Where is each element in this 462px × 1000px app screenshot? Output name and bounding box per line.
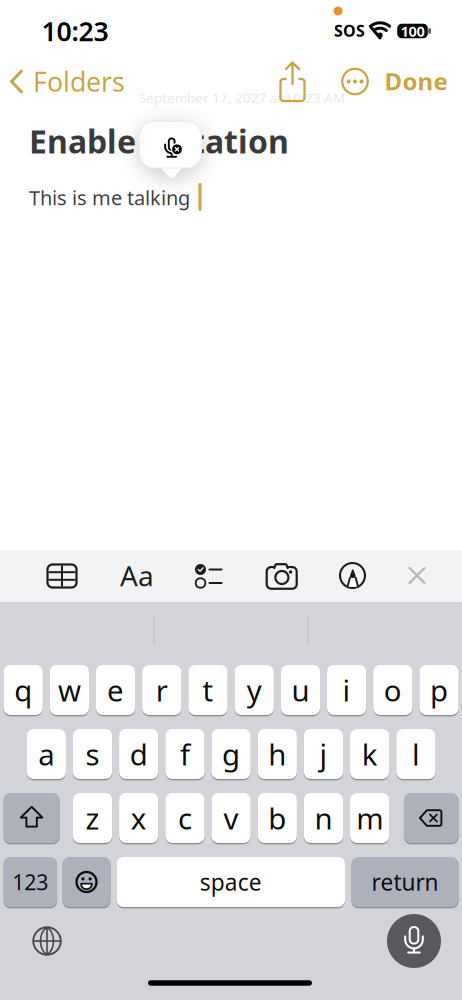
button[interactable]: p: [419, 665, 459, 715]
button[interactable]: e: [96, 665, 135, 715]
button[interactable]: Text format: [120, 557, 154, 594]
button[interactable]: b: [258, 793, 297, 843]
button[interactable]: o: [373, 665, 412, 715]
button[interactable]: z: [73, 793, 112, 843]
button[interactable]: More: [340, 66, 370, 96]
button[interactable]: space: [116, 857, 345, 907]
button[interactable]: 123: [4, 857, 57, 907]
staticText: p: [430, 670, 448, 709]
staticText: Done: [384, 65, 447, 97]
button[interactable]: Dismiss toolbar: [402, 560, 432, 590]
button[interactable]: Emoji: [62, 857, 110, 907]
button[interactable]: l: [396, 729, 435, 779]
staticText: September 17, 2027 at 10:23 AM: [139, 89, 345, 106]
button[interactable]: r: [142, 665, 181, 715]
staticText: h: [268, 734, 286, 773]
button[interactable]: Shift: [4, 793, 60, 843]
button[interactable]: Next keyboard: [31, 925, 63, 957]
button[interactable]: n: [304, 793, 343, 843]
staticText: t: [202, 670, 213, 709]
staticText: v: [224, 798, 239, 837]
staticText: return: [371, 867, 438, 897]
button[interactable]: Done: [384, 65, 447, 97]
button[interactable]: Back to Folders: [6, 64, 126, 99]
staticText: x: [131, 798, 147, 837]
staticText: g: [222, 734, 240, 773]
button[interactable]: return: [351, 857, 458, 907]
staticText: r: [156, 670, 168, 709]
button[interactable]: g: [211, 729, 251, 779]
button[interactable]: Stop dictation: [139, 121, 201, 179]
staticText: 123: [12, 868, 48, 896]
button[interactable]: s: [73, 729, 112, 779]
staticText: j: [319, 734, 327, 773]
staticText: This is me talking: [29, 184, 190, 211]
staticText: 10:23: [41, 13, 108, 49]
staticText: b: [268, 798, 286, 837]
staticText: n: [314, 798, 332, 837]
button[interactable]: Markup: [337, 560, 367, 590]
staticText: c: [178, 798, 192, 837]
button[interactable]: Checklist: [193, 561, 223, 591]
button[interactable]: t: [188, 665, 228, 715]
button[interactable]: f: [165, 729, 204, 779]
button[interactable]: Insert table: [45, 562, 79, 590]
staticText: l: [412, 734, 420, 773]
button[interactable]: w: [50, 665, 89, 715]
button[interactable]: h: [258, 729, 297, 779]
staticText: u: [291, 670, 309, 709]
staticText: space: [200, 867, 262, 897]
staticText: SOS: [334, 20, 365, 41]
button[interactable]: Share: [270, 59, 314, 103]
staticText: 100: [400, 21, 424, 41]
staticText: e: [107, 670, 124, 709]
button[interactable]: Delete: [404, 793, 458, 843]
staticText: k: [362, 734, 378, 773]
staticText: a: [38, 734, 54, 773]
button[interactable]: c: [165, 793, 204, 843]
button[interactable]: j: [304, 729, 343, 779]
button[interactable]: v: [211, 793, 251, 843]
button[interactable]: k: [350, 729, 389, 779]
staticText: Folders: [33, 64, 125, 99]
staticText: o: [384, 670, 402, 709]
button[interactable]: x: [119, 793, 158, 843]
staticText: m: [356, 798, 383, 837]
staticText: s: [85, 734, 99, 773]
staticText: Enable dictation: [29, 120, 289, 162]
staticText: Aa: [120, 557, 154, 594]
button[interactable]: Attach photo: [264, 561, 300, 591]
staticText: y: [247, 670, 262, 709]
staticText: d: [130, 734, 148, 773]
button[interactable]: y: [235, 665, 274, 715]
button[interactable]: a: [27, 729, 66, 779]
staticText: f: [180, 734, 190, 773]
button[interactable]: d: [119, 729, 158, 779]
button[interactable]: u: [281, 665, 320, 715]
staticText: q: [14, 670, 32, 709]
staticText: w: [58, 670, 81, 709]
button[interactable]: q: [4, 665, 43, 715]
button[interactable]: Dictate: [387, 914, 441, 968]
button[interactable]: m: [350, 793, 389, 843]
staticText: z: [85, 798, 99, 837]
button[interactable]: i: [327, 665, 366, 715]
staticText: i: [343, 670, 351, 709]
